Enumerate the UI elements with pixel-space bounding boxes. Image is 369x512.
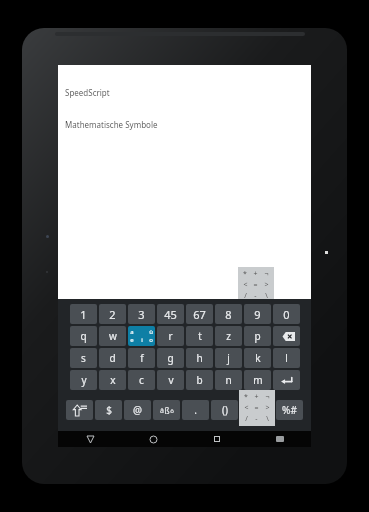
button[interactable]: d bbox=[99, 348, 126, 368]
staticText: m bbox=[253, 373, 263, 387]
staticText: s bbox=[81, 351, 86, 365]
staticText: = bbox=[254, 403, 259, 413]
staticText: / bbox=[244, 291, 247, 301]
staticText: t bbox=[198, 329, 202, 343]
button[interactable]: Back bbox=[58, 431, 122, 447]
staticText: a bbox=[130, 328, 134, 336]
staticText: SpeedScript bbox=[65, 87, 110, 98]
button[interactable]: Home bbox=[122, 431, 185, 447]
staticText: ä bbox=[160, 406, 164, 416]
button[interactable]: y bbox=[70, 370, 97, 390]
button[interactable]: Accents bbox=[153, 400, 180, 420]
button[interactable]: z bbox=[215, 326, 242, 346]
button[interactable]: b bbox=[186, 370, 213, 390]
staticText: g bbox=[167, 351, 174, 365]
button[interactable]: n bbox=[215, 370, 242, 390]
button[interactable]: Keyboard bbox=[248, 431, 311, 447]
button[interactable]: 45 bbox=[157, 304, 184, 324]
button[interactable]: l bbox=[273, 348, 300, 368]
staticText: $ bbox=[106, 403, 112, 417]
button[interactable]: w bbox=[99, 326, 126, 346]
button[interactable]: . bbox=[182, 400, 209, 420]
staticText: 1 bbox=[80, 307, 87, 322]
staticText: ß bbox=[164, 405, 170, 416]
staticText: / bbox=[245, 414, 248, 424]
button[interactable]: 1 bbox=[70, 304, 97, 324]
button[interactable]: m bbox=[244, 370, 271, 390]
staticText: 3 bbox=[138, 307, 145, 322]
button[interactable]: Mathematical symbols bbox=[239, 390, 275, 426]
button[interactable]: Mathematical symbols bbox=[238, 267, 274, 303]
button[interactable]: p bbox=[244, 326, 271, 346]
staticText: - bbox=[255, 414, 258, 424]
staticText: ü bbox=[149, 328, 153, 336]
staticText: @ bbox=[133, 403, 142, 417]
button[interactable]: 67 bbox=[186, 304, 213, 324]
staticText: i bbox=[141, 336, 143, 344]
staticText: 0 bbox=[283, 307, 290, 322]
staticText: + bbox=[253, 269, 258, 279]
button[interactable]: t bbox=[186, 326, 213, 346]
staticText: v bbox=[168, 373, 174, 387]
button[interactable]: g bbox=[157, 348, 184, 368]
staticText: %# bbox=[282, 403, 297, 417]
button[interactable]: r bbox=[157, 326, 184, 346]
button[interactable]: Enter bbox=[273, 370, 300, 390]
button[interactable]: q bbox=[70, 326, 97, 346]
staticText: < bbox=[243, 280, 248, 290]
staticText: > bbox=[265, 403, 270, 413]
staticText: w bbox=[109, 329, 117, 343]
staticText: - bbox=[254, 291, 257, 301]
staticText: q bbox=[80, 329, 87, 343]
staticText: . bbox=[194, 403, 197, 417]
button[interactable]: 8 bbox=[215, 304, 242, 324]
button[interactable]: 2 bbox=[99, 304, 126, 324]
staticText: 8 bbox=[225, 307, 232, 322]
button[interactable]: c bbox=[128, 370, 155, 390]
staticText: * bbox=[243, 269, 247, 279]
button[interactable]: Backspace bbox=[273, 326, 300, 346]
staticText: l bbox=[285, 351, 288, 365]
button[interactable]: f bbox=[128, 348, 155, 368]
button[interactable]: @ bbox=[124, 400, 151, 420]
staticText: r bbox=[168, 329, 173, 343]
button[interactable]: 3 bbox=[128, 304, 155, 324]
button[interactable]: x bbox=[99, 370, 126, 390]
staticText: () bbox=[222, 403, 228, 417]
button[interactable]: 9 bbox=[244, 304, 271, 324]
staticText: z bbox=[226, 329, 231, 343]
staticText: n bbox=[225, 373, 232, 387]
staticText: j bbox=[227, 351, 230, 365]
button[interactable]: $ bbox=[95, 400, 122, 420]
staticText: x bbox=[110, 373, 116, 387]
staticText: Mathematische Symbole bbox=[65, 119, 158, 130]
staticText: \ bbox=[266, 414, 269, 424]
staticText: 45 bbox=[164, 307, 177, 322]
button[interactable]: s bbox=[70, 348, 97, 368]
staticText: * bbox=[244, 392, 248, 402]
staticText: e bbox=[130, 336, 134, 344]
staticText: k bbox=[255, 351, 261, 365]
button[interactable]: () bbox=[211, 400, 238, 420]
button[interactable]: v bbox=[157, 370, 184, 390]
button[interactable]: k bbox=[244, 348, 271, 368]
staticText: ¬ bbox=[264, 269, 269, 279]
staticText: \ bbox=[265, 291, 268, 301]
button[interactable]: 0 bbox=[273, 304, 300, 324]
staticText: ô bbox=[170, 407, 174, 415]
button[interactable] bbox=[244, 400, 271, 420]
button[interactable]: Shift bbox=[66, 400, 93, 420]
staticText: c bbox=[139, 373, 144, 387]
button[interactable]: %# bbox=[276, 400, 303, 420]
button[interactable]: h bbox=[186, 348, 213, 368]
staticText: d bbox=[109, 351, 116, 365]
staticText: 9 bbox=[254, 307, 261, 322]
button[interactable]: a bbox=[128, 326, 155, 346]
button[interactable]: Recent apps bbox=[185, 431, 248, 447]
button[interactable]: j bbox=[215, 348, 242, 368]
staticText: < bbox=[244, 403, 249, 413]
staticText: + bbox=[254, 392, 259, 402]
staticText: ¬ bbox=[265, 392, 270, 402]
staticText: y bbox=[81, 373, 87, 387]
staticText: 67 bbox=[193, 307, 206, 322]
